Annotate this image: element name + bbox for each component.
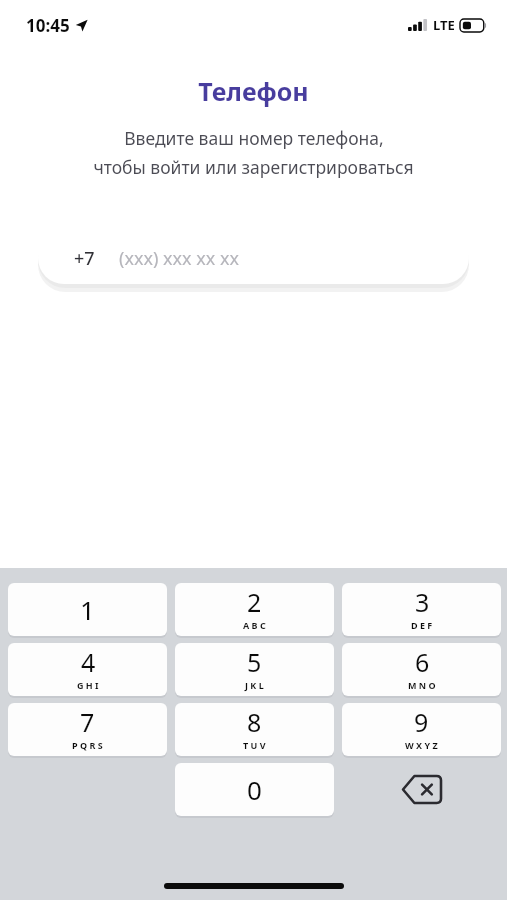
button[interactable]: 9 [342,703,501,756]
button[interactable]: 1 [8,583,167,636]
staticText: Введите ваш номер телефона, [124,126,384,150]
staticText: 8 [247,705,262,739]
staticText: 5 [247,645,262,679]
staticText: W X Y Z [405,739,438,751]
button[interactable]: 2 [175,583,334,636]
staticText: Телефон [0,74,507,108]
staticText: чтобы войти или зарегистрироваться [93,155,414,179]
staticText: A B C [243,619,266,631]
staticText: 1 [80,592,95,627]
staticText: G H I [77,679,99,691]
staticText: 0 [247,772,262,807]
button[interactable]: +7 [38,232,469,284]
button[interactable]: 5 [175,643,334,696]
button[interactable]: 0 [175,763,334,816]
staticText: 4 [81,645,96,679]
staticText: T U V [243,739,266,751]
staticText: LTE [433,16,455,34]
staticText: (xxx) xxx xx xx [119,246,240,271]
button[interactable]: 4 [8,643,167,696]
staticText: D E F [411,619,433,631]
button[interactable]: 7 [8,703,167,756]
staticText: 6 [415,645,430,679]
staticText: 3 [415,585,430,619]
button[interactable]: Backspace [342,763,501,816]
button[interactable]: 6 [342,643,501,696]
staticText: J K L [245,679,264,691]
staticText: 9 [414,705,429,739]
button[interactable]: 3 [342,583,501,636]
staticText: 7 [80,705,95,739]
button[interactable]: 8 [175,703,334,756]
staticText: M N O [408,679,436,691]
staticText: +7 [74,246,95,271]
staticText: 10:45 [26,14,70,37]
staticText: P Q R S [72,739,103,751]
staticText: 2 [247,585,262,619]
